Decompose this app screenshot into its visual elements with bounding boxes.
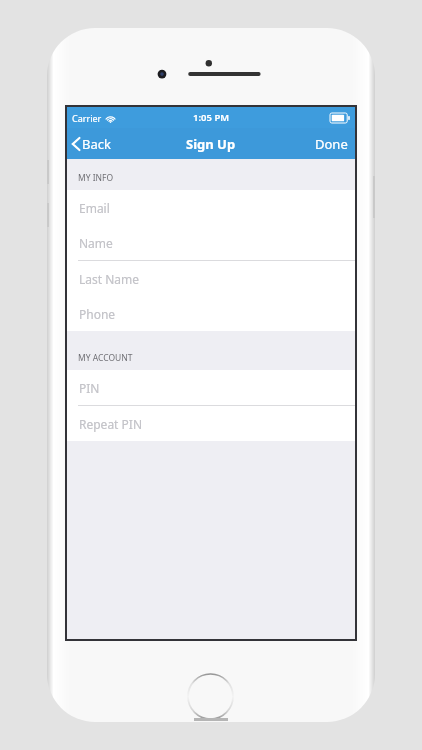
button[interactable]: Back [67, 130, 120, 158]
staticText: Done [315, 135, 348, 153]
staticText: Last Name [79, 271, 140, 287]
button[interactable]: PIN [67, 370, 355, 405]
button[interactable]: Name [67, 225, 355, 260]
staticText: Name [79, 235, 113, 251]
button[interactable]: Done [305, 130, 355, 158]
staticText: Back [82, 135, 111, 153]
staticText: MY INFO [78, 172, 114, 184]
staticText: MY ACCOUNT [78, 352, 133, 364]
staticText: PIN [79, 380, 100, 396]
staticText: 1:05 PM [193, 111, 230, 124]
staticText: Repeat PIN [79, 416, 143, 432]
button[interactable]: Last Name [67, 261, 355, 296]
staticText: Sign Up [186, 135, 236, 153]
button[interactable]: Email [67, 190, 355, 225]
staticText: Carrier [72, 112, 102, 124]
button[interactable]: Phone [67, 296, 355, 331]
staticText: Email [79, 200, 110, 216]
button[interactable]: Repeat PIN [67, 406, 355, 441]
staticText: Phone [79, 306, 116, 322]
